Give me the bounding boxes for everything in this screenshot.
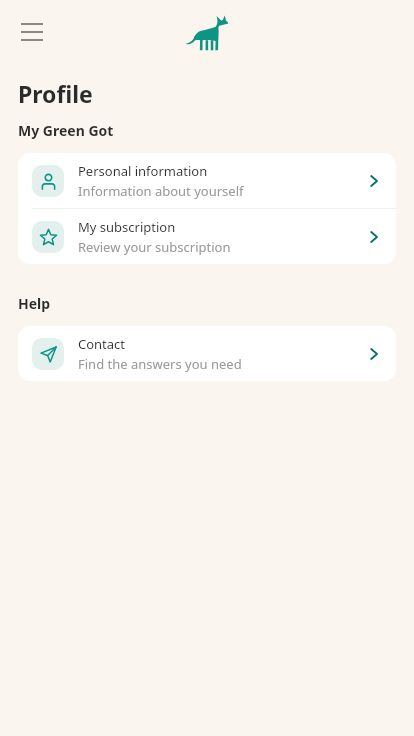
- button[interactable]: Contact: [18, 326, 396, 381]
- staticText: Contact: [78, 335, 126, 353]
- staticText: Information about yourself: [78, 182, 244, 200]
- staticText: My Green Got: [18, 121, 114, 140]
- button[interactable]: Personal information: [18, 153, 396, 208]
- staticText: Personal information: [78, 162, 208, 180]
- staticText: Profile: [18, 78, 93, 109]
- button[interactable]: Menu: [12, 12, 52, 52]
- staticText: Help: [18, 294, 51, 313]
- button[interactable]: My subscription: [18, 209, 396, 264]
- staticText: Review your subscription: [78, 238, 231, 256]
- staticText: Find the answers you need: [78, 355, 242, 373]
- staticText: My subscription: [78, 218, 176, 236]
